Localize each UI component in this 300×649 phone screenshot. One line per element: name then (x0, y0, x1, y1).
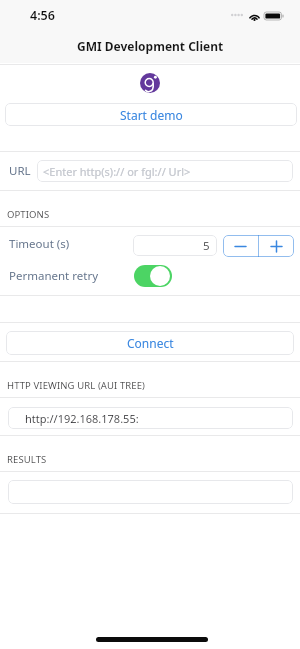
button[interactable]: <Enter http(s):// or fgl:// Url> (37, 160, 293, 182)
staticText: http://192.168.178.55: (25, 411, 139, 426)
staticText: RESULTS (7, 453, 47, 466)
staticText: Connect (127, 335, 174, 351)
staticText: Timeout (s) (9, 236, 70, 252)
staticText: 5 (203, 238, 210, 254)
staticText: URL (9, 163, 31, 179)
button[interactable] (8, 480, 293, 504)
staticText: OPTIONS (7, 208, 50, 221)
button[interactable]: Start demo (5, 103, 297, 126)
button[interactable]: Permanent retry (134, 265, 172, 287)
staticText: <Enter http(s):// or fgl:// Url> (43, 164, 191, 179)
button[interactable]: Increase (259, 235, 294, 257)
staticText: GMI Development Client (77, 38, 224, 54)
button[interactable]: Connect (6, 331, 294, 355)
button[interactable]: Decrease (223, 235, 258, 257)
button[interactable]: URL (0, 152, 300, 190)
staticText: Permanent retry (9, 268, 99, 284)
button[interactable]: 5 (133, 235, 217, 256)
staticText: Start demo (120, 107, 183, 123)
staticText: HTTP VIEWING URL (AUI TREE) (7, 379, 146, 392)
button[interactable]: http://192.168.178.55: (8, 407, 293, 429)
staticText: 4:56 (30, 7, 55, 24)
